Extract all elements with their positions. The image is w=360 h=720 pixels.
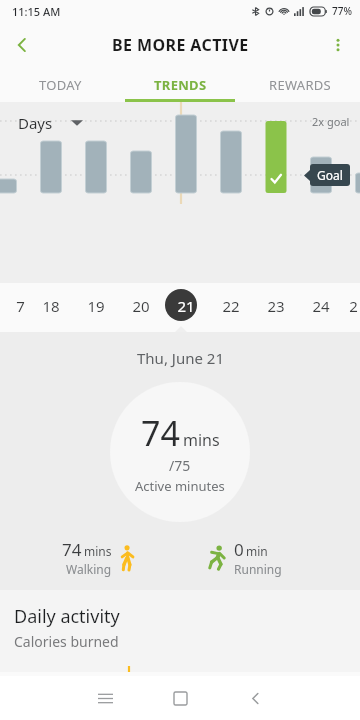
button[interactable]: 23 [256, 293, 296, 319]
button[interactable]: 74 [62, 538, 135, 577]
staticText: 2 [349, 296, 358, 316]
staticText: 24 [312, 296, 330, 316]
staticText: Walking [66, 561, 112, 577]
staticText: Calories burned [14, 632, 119, 651]
button[interactable]: 24 [301, 293, 341, 319]
button[interactable]: 2 [346, 293, 360, 319]
button[interactable]: 22 [211, 293, 251, 319]
button[interactable]: Back [235, 678, 275, 718]
button[interactable]: Home [160, 678, 200, 718]
staticText: TODAY [39, 76, 82, 94]
button[interactable]: REWARDS [240, 68, 360, 102]
staticText: TRENDS [154, 76, 207, 94]
staticText: Active minutes [135, 477, 225, 495]
other: Running [208, 545, 226, 571]
staticText: 77% [332, 4, 352, 18]
staticText: 74 [141, 410, 180, 456]
button[interactable]: Days [18, 113, 83, 133]
staticText: /75 [169, 456, 191, 475]
other: Walking [120, 545, 135, 571]
staticText: Daily activity [14, 604, 120, 629]
button[interactable]: TODAY [0, 68, 120, 102]
button[interactable]: TRENDS [120, 68, 240, 102]
button[interactable]: More options [316, 23, 360, 67]
staticText: 23 [267, 296, 285, 316]
staticText: mins [183, 429, 220, 451]
staticText: 20 [132, 296, 150, 316]
staticText: Thu, June 21 [137, 348, 224, 368]
staticText: REWARDS [269, 76, 332, 94]
staticText: 11:15 AM [12, 4, 61, 19]
staticText: 18 [42, 296, 60, 316]
staticText: 0 [234, 538, 244, 561]
button[interactable]: 18 [31, 293, 71, 319]
button[interactable]: Recents [85, 678, 125, 718]
button[interactable]: Back [0, 23, 44, 67]
staticText: 21 [177, 296, 195, 316]
staticText: mins [84, 543, 112, 559]
button[interactable]: Running [208, 538, 282, 577]
staticText: 2x goal [312, 114, 350, 129]
button[interactable]: 20 [121, 293, 161, 319]
staticText: 7 [16, 296, 25, 316]
staticText: Goal [317, 167, 343, 183]
button[interactable]: 19 [76, 293, 116, 319]
button[interactable]: Daily activity [0, 590, 360, 672]
button[interactable]: 7 [0, 293, 40, 319]
staticText: Running [234, 561, 282, 577]
staticText: 74 [62, 538, 82, 561]
staticText: BE MORE ACTIVE [112, 34, 249, 56]
staticText: min [246, 543, 268, 559]
staticText: 22 [222, 296, 240, 316]
staticText: 19 [87, 296, 105, 316]
button[interactable]: 21 [166, 293, 206, 319]
staticText: Days [18, 113, 53, 133]
